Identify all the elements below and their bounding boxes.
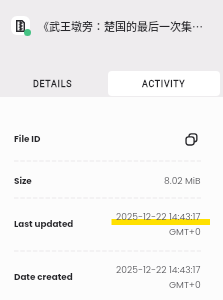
button[interactable]: File ID <box>0 117 223 160</box>
button[interactable]: Date created <box>0 250 223 300</box>
staticText: 2025-12-22 14:43:17 <box>116 210 201 223</box>
staticText: 《武王墩旁：楚国的最后一次集… <box>38 18 203 34</box>
staticText: Size <box>14 175 32 187</box>
staticText: 8.02 MiB <box>164 174 201 187</box>
button[interactable]: Copy file ID <box>181 129 201 149</box>
staticText: DETAILS <box>33 79 73 89</box>
staticText: GMT+0 <box>169 278 201 291</box>
staticText: Date created <box>14 271 73 283</box>
staticText: ACTIVITY <box>142 79 186 89</box>
button[interactable]: Size <box>0 160 223 197</box>
button[interactable]: Last updated <box>0 197 223 250</box>
staticText: Last updated <box>14 218 74 230</box>
staticText: GMT+0 <box>169 225 201 238</box>
staticText: 2025-12-22 14:43:17 <box>116 263 201 276</box>
staticText: File ID <box>14 133 41 145</box>
button[interactable]: DETAILS <box>0 71 108 96</box>
button[interactable]: ACTIVITY <box>108 71 220 96</box>
